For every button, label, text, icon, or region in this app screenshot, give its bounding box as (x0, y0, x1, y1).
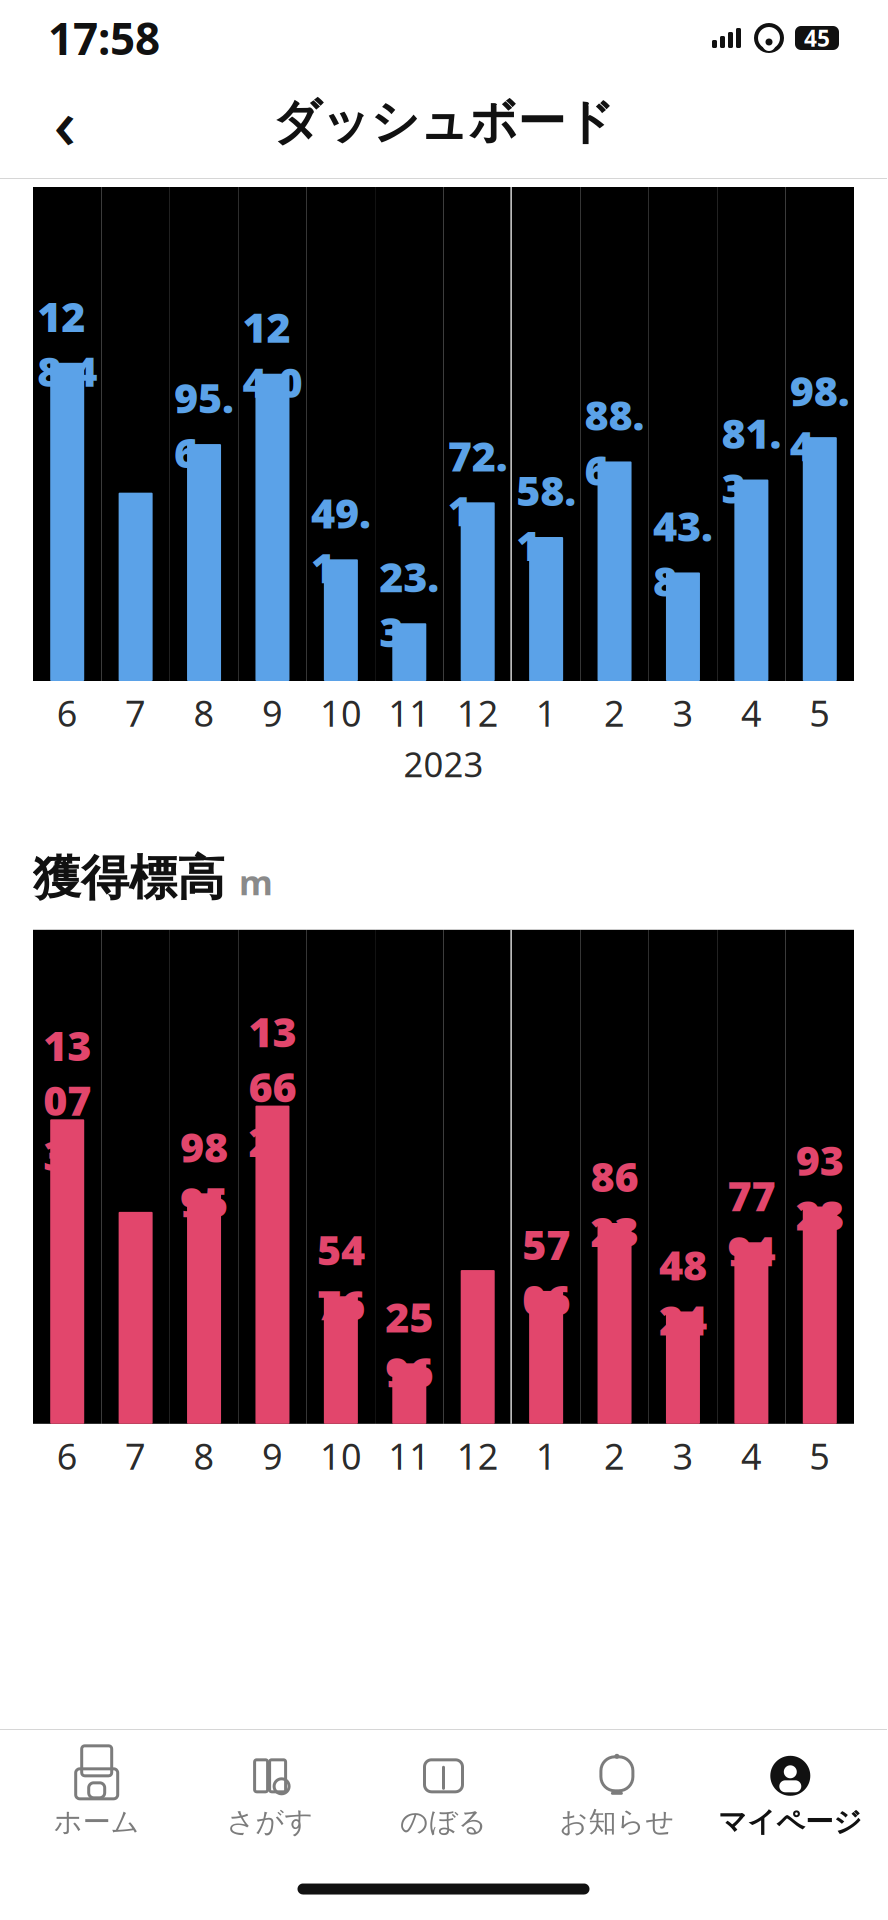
staticText: 12 (457, 1432, 499, 1480)
staticText: 4 (741, 1432, 762, 1480)
staticText: 128.4 (37, 288, 97, 398)
staticText: 4 (741, 689, 762, 737)
staticText: 10 (320, 1432, 362, 1480)
staticText: 8 (193, 1432, 214, 1480)
staticText: 2023 (403, 741, 483, 787)
staticText: 49.1 (311, 485, 371, 595)
staticText: 3 (672, 1432, 693, 1480)
staticText: 2596 (385, 1289, 433, 1399)
staticText: 11 (388, 1432, 430, 1480)
staticText: 10 (320, 689, 362, 737)
staticText: 81.3 (721, 405, 781, 515)
staticText: 124.0 (242, 299, 302, 409)
button[interactable]: ホーム (10, 1743, 183, 1845)
staticText: 5706 (522, 1216, 570, 1326)
staticText: 1 (536, 1432, 557, 1480)
staticText: 1 (536, 689, 557, 737)
staticText: 3 (672, 689, 693, 737)
staticText: 2 (604, 1432, 625, 1480)
staticText: 72.1 (448, 428, 508, 538)
staticText: ‹ (53, 76, 76, 168)
staticText: 2 (604, 689, 625, 737)
staticText: 7 (125, 689, 146, 737)
staticText: 4824 (659, 1237, 707, 1347)
staticText: 11 (388, 689, 430, 737)
staticText: ホーム (54, 1805, 140, 1839)
staticText: 9 (262, 689, 283, 737)
staticText: 58.1 (516, 463, 576, 572)
staticText: m (239, 859, 273, 905)
staticText: 13662 (248, 1004, 296, 1168)
staticText: 13073 (43, 1017, 91, 1182)
staticText: 9 (262, 1432, 283, 1480)
button[interactable]: お知らせ (530, 1743, 704, 1845)
staticText: 45 (804, 23, 830, 53)
staticText: 6 (57, 1432, 78, 1480)
staticText: 95.6 (174, 370, 234, 479)
staticText: 6 (57, 689, 78, 737)
staticText: お知らせ (559, 1805, 674, 1839)
staticText: 9895 (180, 1119, 228, 1229)
button[interactable]: のぼる (357, 1743, 530, 1845)
staticText: 8 (193, 689, 214, 737)
staticText: 88.6 (584, 387, 644, 497)
staticText: 7 (125, 1432, 146, 1480)
staticText: 獲得標高 (33, 849, 225, 908)
staticText: 23.3 (379, 549, 439, 659)
staticText: 17:58 (48, 9, 160, 67)
staticText: 43.8 (653, 498, 713, 608)
button[interactable]: さがす (183, 1743, 357, 1845)
staticText: マイページ (718, 1805, 862, 1839)
staticText: 5 (809, 689, 830, 737)
staticText: 5476 (317, 1222, 365, 1332)
staticText: 7794 (727, 1168, 775, 1278)
staticText: 12 (457, 689, 499, 737)
staticText: のぼる (400, 1805, 487, 1839)
staticText: さがす (227, 1805, 314, 1839)
staticText: 9328 (796, 1132, 844, 1242)
staticText: 98.4 (790, 363, 850, 473)
staticText: 8623 (590, 1149, 638, 1258)
button[interactable]: Back (30, 87, 100, 157)
staticText: ダッシュボード (272, 92, 614, 151)
button[interactable]: マイページ (704, 1743, 877, 1845)
staticText: 5 (809, 1432, 830, 1480)
